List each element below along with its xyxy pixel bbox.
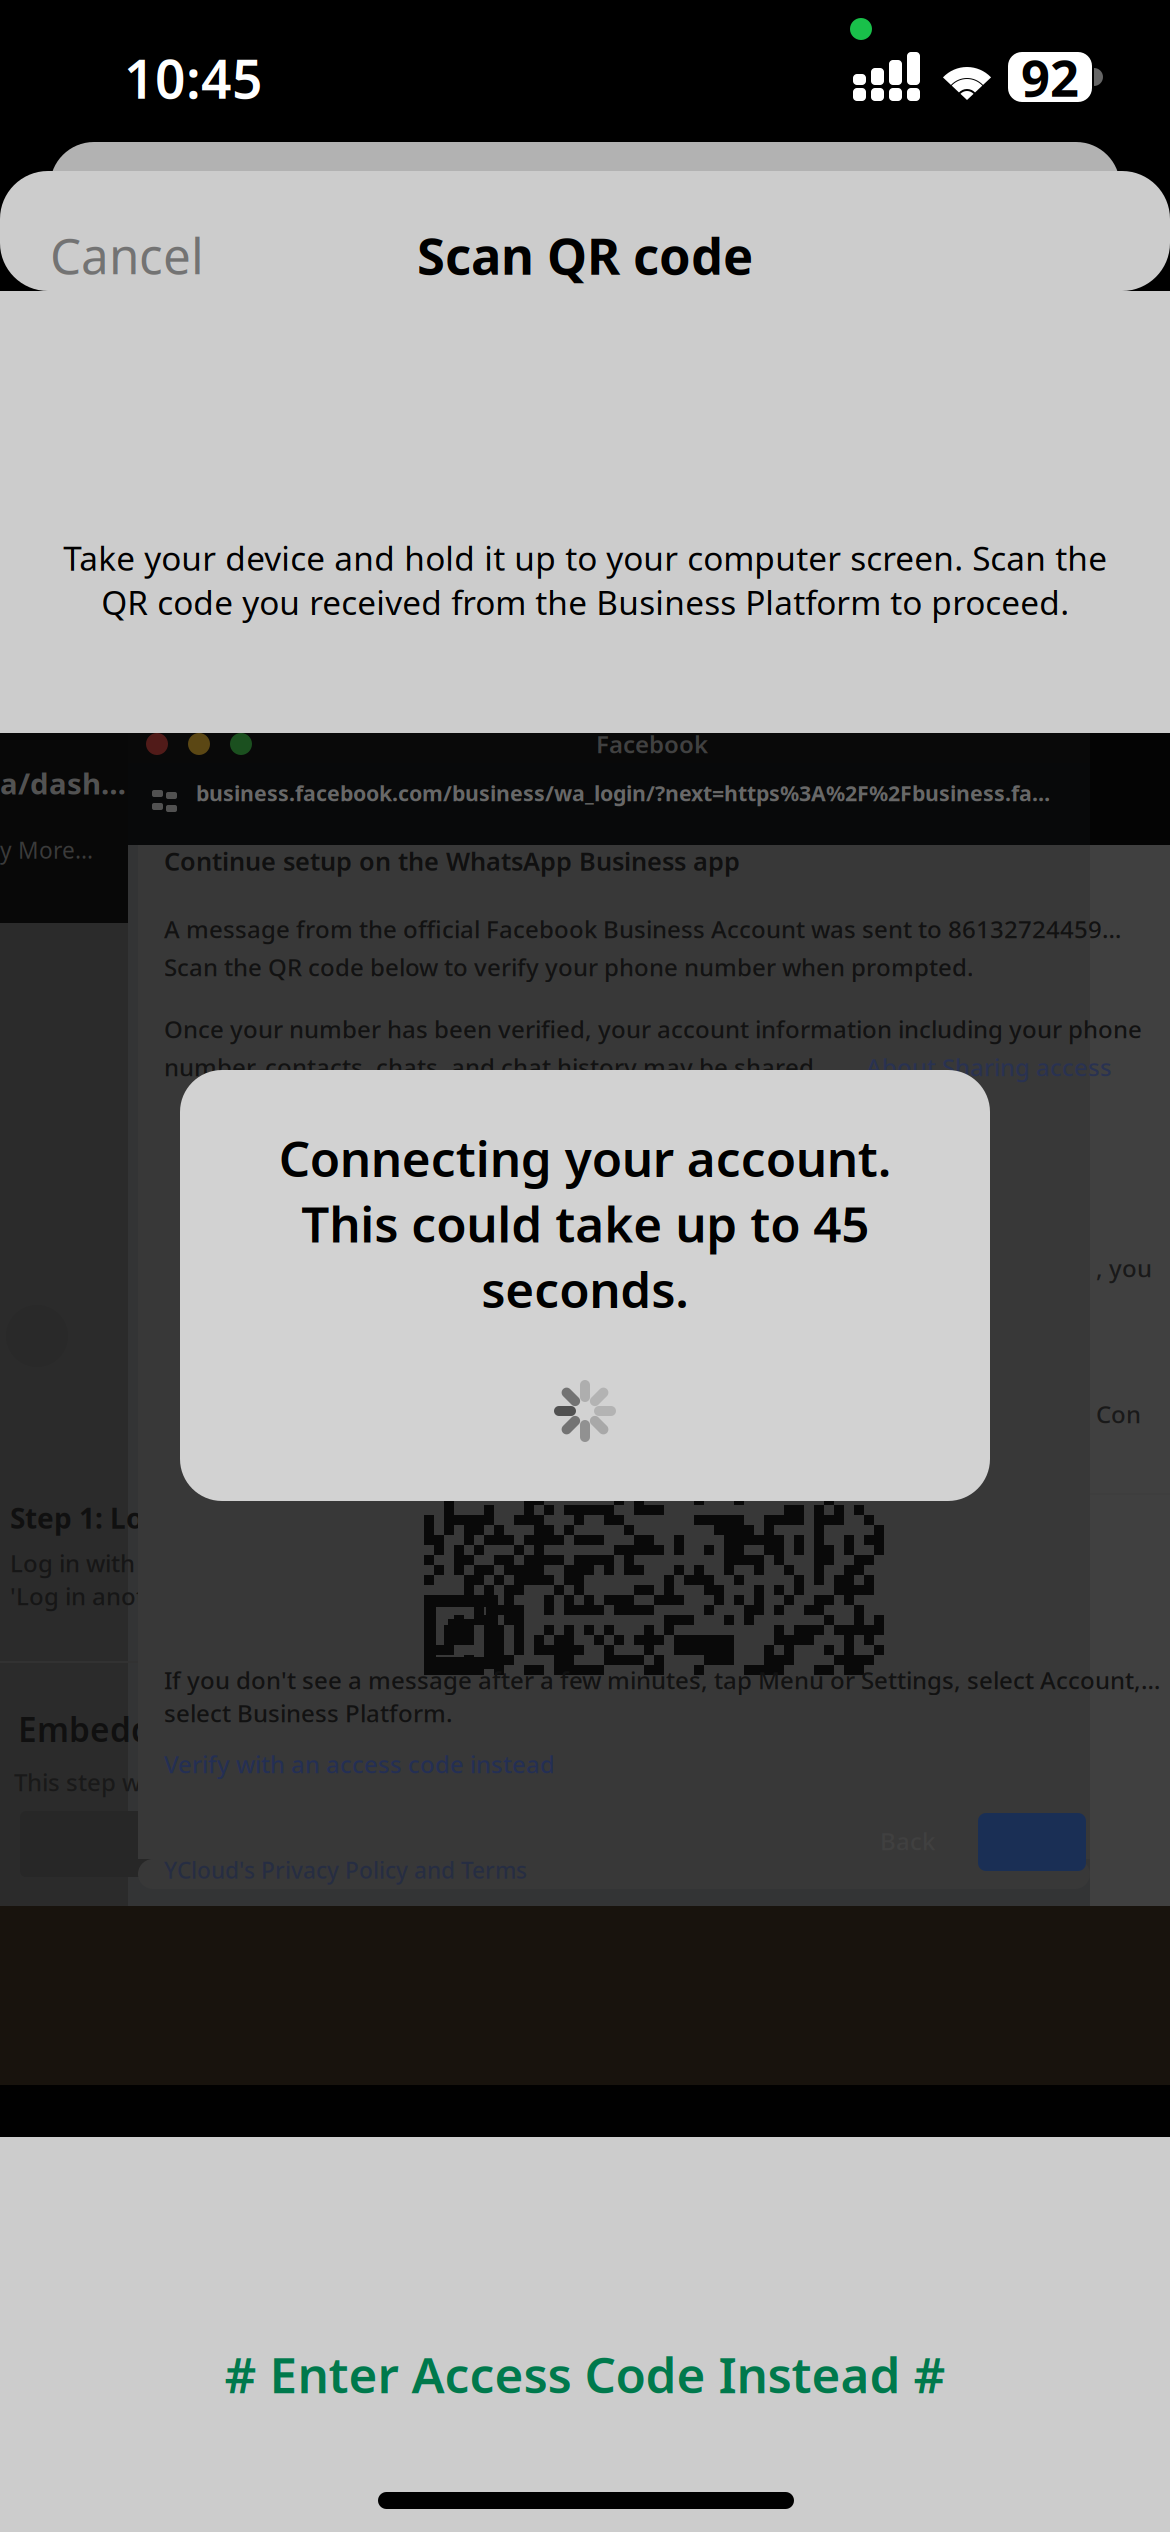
staticText: number, contacts, chats, and chat histor… bbox=[164, 1051, 821, 1083]
staticText: select Business Platform. bbox=[164, 1697, 453, 1729]
staticText: Connecting your account. This could take… bbox=[278, 1125, 891, 1321]
button[interactable]: # Enter Access Code Instead # bbox=[0, 2326, 1170, 2422]
staticText: This step will o bbox=[14, 1766, 180, 1798]
staticText: a/dashboar bbox=[0, 763, 128, 802]
staticText: y More... bbox=[0, 835, 93, 865]
staticText: A message from the official Facebook Bus… bbox=[164, 913, 1124, 945]
staticText: Take your device and hold it up to your … bbox=[63, 536, 1107, 624]
staticText: 10:45 bbox=[124, 43, 263, 113]
staticText: 'Log in anothe bbox=[10, 1580, 174, 1612]
staticText: Facebook bbox=[596, 728, 708, 760]
staticText: If you don't see a message after a few m… bbox=[164, 1664, 1164, 1696]
staticText: Scan QR code bbox=[417, 221, 753, 289]
staticText: Step 1: Log in bbox=[10, 1499, 190, 1537]
staticText: business.facebook.com/business/wa_login/… bbox=[196, 779, 1050, 807]
staticText: About Sharing access bbox=[866, 1051, 1112, 1083]
staticText: 92 bbox=[1021, 43, 1079, 111]
staticText: Verify with an access code instead bbox=[164, 1748, 555, 1780]
staticText: Once your number has been verified, your… bbox=[164, 1013, 1142, 1045]
staticText: # Enter Access Code Instead # bbox=[224, 2341, 945, 2407]
staticText: , you bbox=[1096, 1252, 1152, 1284]
staticText: YCloud's Privacy Policy and Terms bbox=[164, 1855, 527, 1885]
staticText: Cancel bbox=[50, 222, 204, 288]
staticText: Embedded bbox=[18, 1707, 193, 1751]
button[interactable]: Cancel bbox=[0, 198, 254, 312]
staticText: Con bbox=[1096, 1398, 1141, 1430]
staticText: Log in with th bbox=[10, 1547, 165, 1579]
staticText: Scan the QR code below to verify your ph… bbox=[164, 951, 974, 983]
staticText: Continue setup on the WhatsApp Business … bbox=[164, 844, 740, 878]
